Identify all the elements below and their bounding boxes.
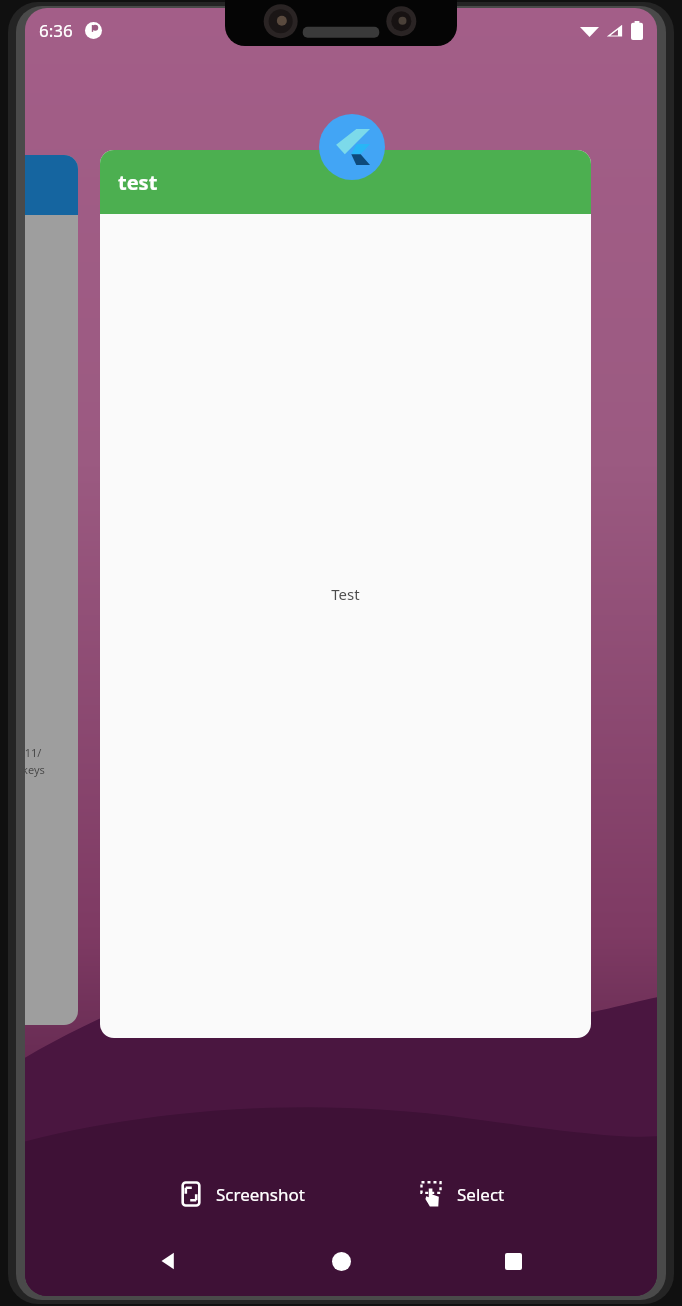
button[interactable]: Back [141,1233,197,1289]
button[interactable]: test [100,150,591,1038]
staticText: rm:11/ [25,745,42,760]
staticText: ev-keys [25,762,45,777]
button[interactable]: rm:11/ [25,155,78,1025]
staticText: Select [457,1183,505,1206]
button[interactable]: Home [313,1233,369,1289]
staticText: Screenshot [216,1183,305,1206]
button[interactable]: Recents [485,1233,541,1289]
button[interactable]: test app icon [319,114,385,180]
button[interactable]: Select [411,1174,511,1214]
staticText: test [118,169,158,196]
button[interactable]: Screenshot [172,1175,311,1213]
staticText: 6:36 [39,19,73,42]
staticText: Test [331,584,360,604]
